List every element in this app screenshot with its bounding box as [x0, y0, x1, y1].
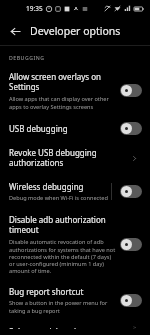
staticText: DEBUGGING — [9, 54, 45, 61]
staticText: Bug report shortcut — [9, 286, 84, 297]
button[interactable]: Wireless debugging — [0, 175, 150, 208]
button[interactable]: Back — [6, 22, 24, 40]
button[interactable]: Open Revoke USB debugging authorizations — [128, 152, 140, 164]
staticText: Disable adb authorization timeout — [9, 214, 116, 236]
staticText: Revoke USB debugging authorizations — [9, 147, 124, 169]
staticText: Show a button in the power menu for taki… — [9, 299, 116, 314]
button[interactable]: Open Select mock location app — [128, 326, 140, 329]
staticText: Allow apps that can display over other a… — [9, 95, 116, 110]
button[interactable]: Toggle Bug report shortcut — [120, 294, 142, 307]
button[interactable]: Select mock location app — [0, 320, 150, 335]
button[interactable]: Toggle Allow screen overlays on Settings — [120, 84, 142, 97]
staticText: Select mock location app — [9, 326, 103, 329]
staticText: 19:35 — [26, 4, 43, 13]
button[interactable]: Allow screen overlays on Settings — [0, 65, 150, 116]
staticText: Developer options — [30, 24, 121, 38]
button[interactable]: Toggle Disable adb authorization timeout — [120, 238, 142, 251]
button[interactable]: Toggle USB debugging — [120, 122, 142, 135]
staticText: Disable automatic revocation of adb auth… — [9, 238, 116, 274]
button[interactable]: Disable adb authorization timeout — [0, 208, 150, 280]
button[interactable]: Toggle Wireless debugging — [120, 185, 142, 198]
staticText: USB debugging — [9, 123, 68, 134]
button[interactable]: USB debugging — [0, 116, 150, 141]
staticText: Allow screen overlays on Settings — [9, 71, 116, 93]
staticText: Wireless debugging — [9, 181, 84, 192]
button[interactable]: Revoke USB debugging authorizations — [0, 141, 150, 175]
button[interactable]: Bug report shortcut — [0, 280, 150, 320]
staticText: Debug mode when Wi-Fi is connected — [9, 194, 108, 202]
